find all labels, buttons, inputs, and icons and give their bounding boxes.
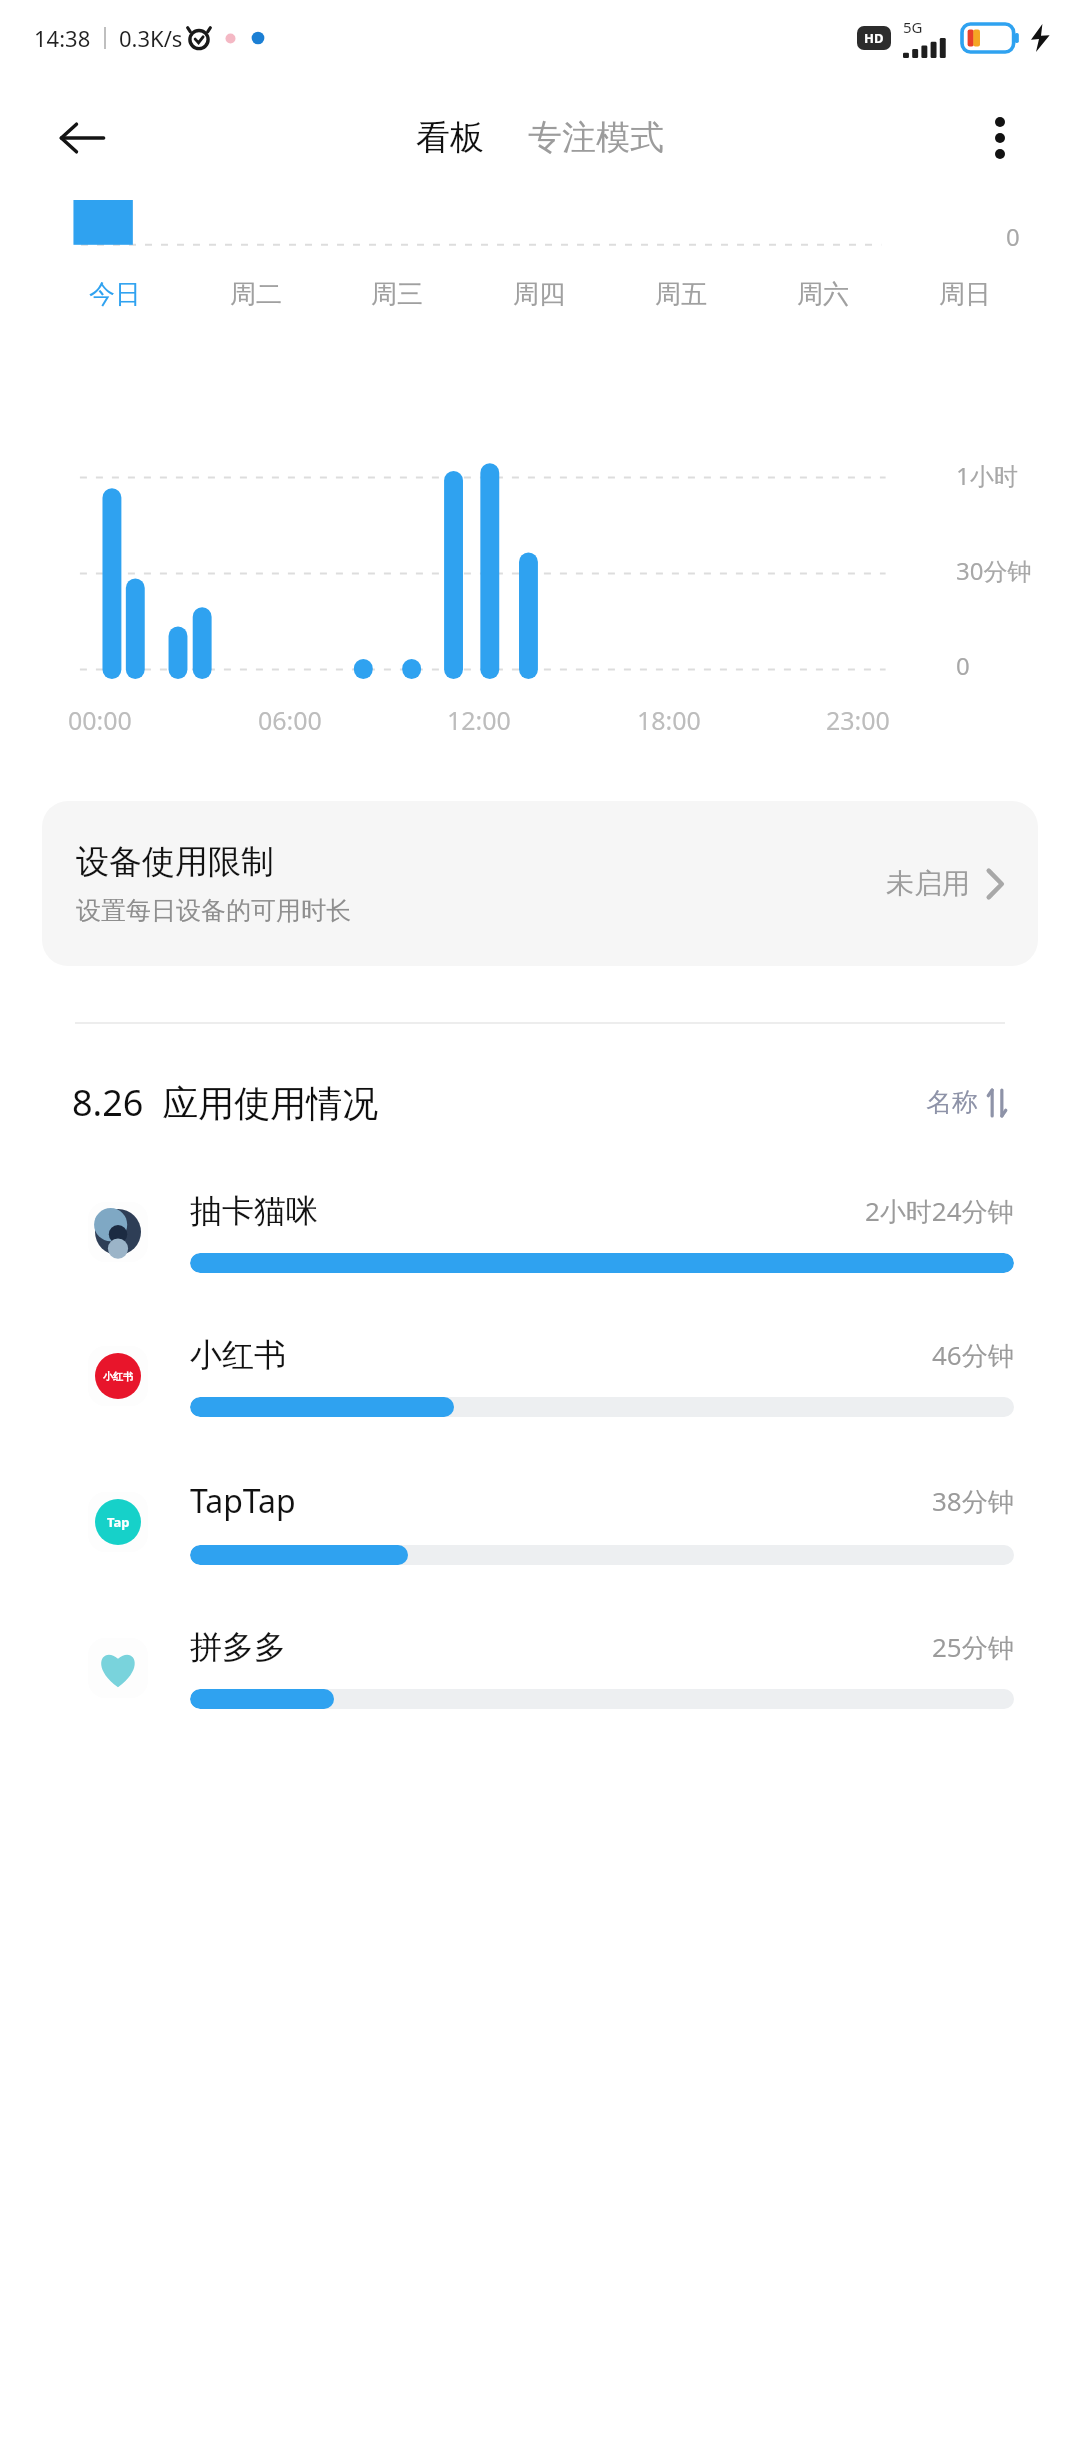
staticText: 设置每日设备的可用时长 [76,895,351,926]
button[interactable]: 拼多多 [0,1607,1080,1751]
button[interactable]: 周日 [894,270,1036,319]
staticText: 未启用 [886,866,970,901]
button[interactable]: 小红书 [0,1315,1080,1459]
staticText: 看板 [416,116,484,159]
staticText: 小红书 [190,1335,286,1375]
staticText: 名称 [926,1086,978,1119]
staticText: 8.26 应用使用情况 [72,1078,379,1127]
staticText: 30分钟 [956,554,1032,587]
staticText: TapTap [190,1479,296,1523]
staticText: 设备使用限制 [76,841,274,883]
button[interactable]: 周二 [185,270,326,319]
staticText: 周日 [939,278,991,311]
staticText: 周五 [655,278,707,311]
staticText: 14:38 [34,23,91,53]
staticText: 06:00 [258,703,322,737]
staticText: 小红书 [103,1370,133,1383]
button[interactable]: 周五 [610,270,752,319]
staticText: 周四 [513,278,565,311]
staticText: 周三 [371,278,423,311]
button[interactable]: 今日 [44,270,185,319]
button[interactable]: 看板 [408,110,492,165]
staticText: 00:00 [68,703,132,737]
button[interactable]: 专注模式 [520,110,672,165]
button[interactable]: Tap [0,1459,1080,1607]
button[interactable]: 名称 [920,1080,1014,1125]
button[interactable]: More options [968,106,1032,170]
button[interactable]: 周四 [468,270,610,319]
staticText: 25分钟 [932,1629,1014,1665]
button[interactable]: 周六 [752,270,894,319]
staticText: 38分钟 [932,1483,1014,1519]
button[interactable]: 抽卡猫咪 [0,1171,1080,1315]
staticText: 1小时 [956,459,1018,492]
staticText: 18:00 [637,703,701,737]
staticText: 0 [1006,220,1020,253]
staticText: 0 [956,649,970,682]
button[interactable]: 周三 [326,270,468,319]
staticText: 拼多多 [190,1627,286,1667]
staticText: 周二 [230,278,282,311]
staticText: 专注模式 [528,116,664,159]
staticText: 2小时24分钟 [865,1193,1014,1229]
staticText: 今日 [89,278,141,311]
staticText: 46分钟 [932,1337,1014,1373]
staticText: 周六 [797,278,849,311]
staticText: 抽卡猫咪 [190,1191,318,1231]
staticText: Tap [107,1513,130,1531]
button[interactable]: Back [48,104,116,172]
staticText: HD [864,29,884,47]
staticText: 12:00 [447,703,511,737]
staticText: 23:00 [826,703,890,737]
staticText: 0.3K/s [119,23,183,53]
staticText: 5G [903,17,923,37]
button[interactable]: 设备使用限制 [42,801,1038,966]
